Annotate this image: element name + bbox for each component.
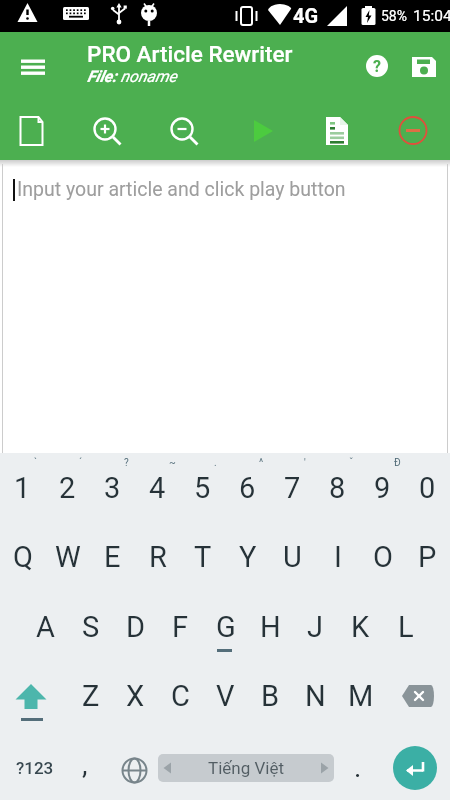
button[interactable]: Input your article and click play button [0, 160, 450, 453]
button[interactable]: Z [68, 661, 113, 731]
button[interactable]: 7 [270, 453, 315, 522]
staticText: ^ [259, 457, 264, 469]
staticText: 8 [329, 471, 346, 505]
staticText: U [283, 540, 302, 574]
button[interactable]: V [203, 661, 248, 731]
button[interactable]: M [338, 661, 383, 731]
button[interactable] [393, 746, 437, 790]
button[interactable]: E [90, 522, 135, 592]
button[interactable] [9, 678, 54, 723]
staticText: D [126, 610, 146, 644]
button[interactable] [166, 113, 202, 149]
staticText: F [172, 610, 189, 644]
staticText: ? [124, 457, 129, 469]
button[interactable] [89, 113, 125, 149]
staticText: 2 [59, 471, 76, 505]
staticText: W [55, 540, 81, 574]
button[interactable]: 6 [225, 453, 270, 522]
button[interactable]: W [45, 522, 90, 592]
button[interactable]: N [293, 661, 338, 731]
button[interactable]: 3 [90, 453, 135, 522]
button[interactable] [319, 113, 355, 149]
button[interactable]: P [405, 522, 450, 592]
button[interactable]: A [23, 592, 68, 661]
button[interactable]: D [113, 592, 158, 661]
staticText: 6 [239, 471, 256, 505]
staticText: 7 [284, 471, 301, 505]
button[interactable] [13, 113, 49, 149]
staticText: File: noname [87, 67, 177, 86]
button[interactable]: S [68, 592, 113, 661]
staticText: 4 [149, 471, 166, 505]
staticText: N [305, 679, 326, 713]
button[interactable]: K [338, 592, 383, 661]
staticText: O [373, 540, 393, 574]
staticText: E [104, 540, 121, 574]
button[interactable]: U [270, 522, 315, 592]
button[interactable]: I [315, 522, 360, 592]
staticText: H [260, 610, 281, 644]
button[interactable]: Tiếng Việt [158, 754, 334, 782]
button[interactable]: C [158, 661, 203, 731]
staticText: R [149, 540, 167, 574]
staticText: 9 [374, 471, 391, 505]
staticText: M [348, 679, 374, 713]
staticText: Input your article and click play button [17, 178, 346, 201]
button[interactable] [121, 757, 148, 784]
staticText: A [36, 610, 55, 644]
staticText: . [214, 457, 217, 469]
staticText: 4G [293, 4, 319, 27]
button[interactable]: 1 [0, 453, 45, 522]
staticText: C [171, 679, 190, 713]
button[interactable]: 5 [180, 453, 225, 522]
button[interactable]: L [383, 592, 428, 661]
button[interactable]: 4 [135, 453, 180, 522]
staticText: Q [13, 540, 33, 574]
staticText: ?123 [16, 758, 54, 778]
button[interactable]: J [293, 592, 338, 661]
button[interactable]: ?123 [10, 745, 60, 790]
button[interactable]: ? [362, 51, 392, 81]
button[interactable]: H [248, 592, 293, 661]
staticText: ˇ [349, 457, 354, 469]
staticText: S [82, 610, 100, 644]
staticText: 1 [14, 471, 31, 505]
staticText: ` [34, 457, 38, 469]
button[interactable]: G [203, 592, 248, 661]
button[interactable]: B [248, 661, 293, 731]
staticText: 3 [104, 471, 121, 505]
button[interactable] [245, 113, 281, 149]
button[interactable]: Y [225, 522, 270, 592]
staticText: Z [82, 679, 100, 713]
button[interactable]: 0 [405, 453, 450, 522]
button[interactable]: X [113, 661, 158, 731]
button[interactable]: R [135, 522, 180, 592]
button[interactable]: Q [0, 522, 45, 592]
button[interactable]: 2 [45, 453, 90, 522]
staticText: 0 [419, 471, 436, 505]
button[interactable] [395, 113, 431, 149]
staticText: Tiếng Việt [208, 758, 284, 778]
button[interactable] [13, 50, 53, 80]
staticText: Đ [394, 457, 401, 469]
staticText: 58% [381, 8, 407, 24]
button[interactable] [341, 745, 377, 790]
staticText: ´ [79, 457, 83, 469]
button[interactable]: 8 [315, 453, 360, 522]
staticText: L [398, 610, 414, 644]
staticText: PRO Article Rewriter [87, 41, 293, 67]
button[interactable] [70, 745, 106, 790]
staticText: ? [373, 57, 381, 76]
staticText: T [194, 540, 212, 574]
staticText: G [216, 610, 236, 644]
staticText: . [354, 751, 362, 784]
button[interactable] [409, 55, 441, 83]
button[interactable] [395, 675, 441, 717]
button[interactable]: O [360, 522, 405, 592]
staticText: B [261, 679, 280, 713]
button[interactable]: T [180, 522, 225, 592]
button[interactable]: 9 [360, 453, 405, 522]
staticText: I [334, 540, 342, 574]
button[interactable]: F [158, 592, 203, 661]
staticText: 15:04 [413, 7, 450, 25]
